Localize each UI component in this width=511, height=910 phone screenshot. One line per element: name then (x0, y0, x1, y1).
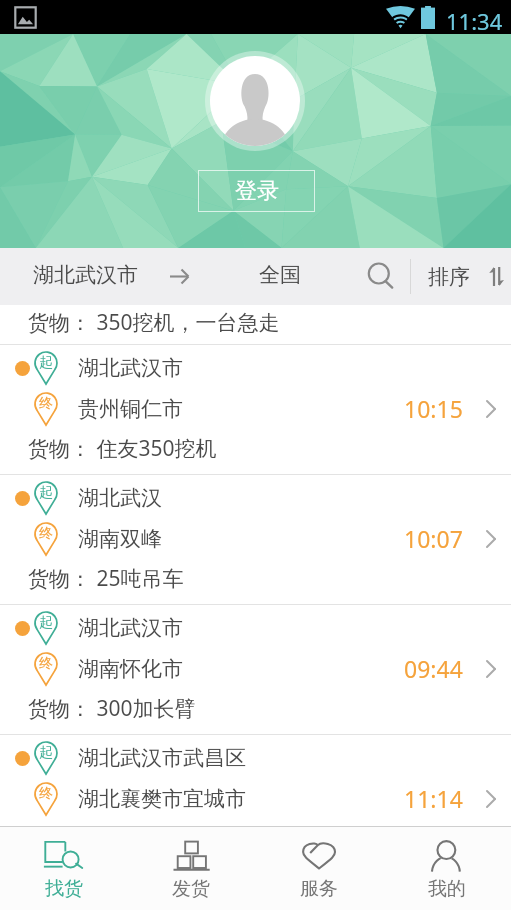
staticText: 贵州铜仁市 (78, 396, 183, 422)
button[interactable]: 服务 (255, 827, 383, 910)
staticText: 起 (39, 744, 53, 762)
staticText: 湖北武汉 (78, 485, 162, 511)
staticText: 11:14 (404, 783, 463, 814)
button[interactable]: 登录 (198, 170, 315, 212)
button[interactable]: 起 (0, 345, 511, 474)
staticText: 10:07 (404, 523, 463, 554)
button[interactable]: 起 (0, 735, 511, 826)
staticText: 起 (39, 614, 53, 632)
staticText: 湖北武汉市武昌区 (78, 745, 246, 771)
staticText: 湖南双峰 (78, 526, 162, 552)
staticText: 起 (39, 354, 53, 372)
staticText: 11:34 (446, 6, 503, 36)
staticText: 货物： 住友350挖机 (28, 434, 217, 463)
button[interactable]: 货物： 350挖机，一台急走 (0, 305, 511, 344)
staticText: 终 (39, 655, 53, 673)
button[interactable]: 起 (0, 605, 511, 734)
staticText: 终 (39, 785, 53, 803)
staticText: 服务 (300, 877, 338, 901)
staticText: 货物： 350挖机，一台急走 (28, 308, 280, 337)
staticText: 09:44 (404, 653, 463, 684)
staticText: 终 (39, 395, 53, 413)
staticText: 找货 (45, 877, 83, 901)
staticText: 湖北武汉市 (78, 355, 183, 381)
button[interactable]: 湖北武汉市 (0, 248, 355, 305)
button[interactable]: 找货 (0, 827, 127, 910)
button[interactable]: Avatar (210, 56, 300, 146)
button[interactable]: 起 (0, 475, 511, 604)
button[interactable]: 发货 (127, 827, 255, 910)
button[interactable]: 排序 (411, 248, 511, 305)
staticText: 湖南怀化市 (78, 656, 183, 682)
staticText: 湖北武汉市 (33, 262, 138, 288)
staticText: 湖北襄樊市宜城市 (78, 786, 246, 812)
staticText: 终 (39, 525, 53, 543)
staticText: 全国 (259, 262, 301, 288)
staticText: 排序 (428, 264, 470, 290)
staticText: 我的 (428, 877, 466, 901)
staticText: 货物： 300加长臂 (28, 694, 196, 723)
staticText: 登录 (235, 177, 279, 205)
button[interactable]: Search (356, 248, 410, 305)
staticText: 10:15 (404, 393, 463, 424)
staticText: 货物： 25吨吊车 (28, 564, 184, 593)
staticText: 起 (39, 484, 53, 502)
staticText: 发货 (172, 877, 210, 901)
staticText: 湖北武汉市 (78, 615, 183, 641)
button[interactable]: 我的 (383, 827, 511, 910)
